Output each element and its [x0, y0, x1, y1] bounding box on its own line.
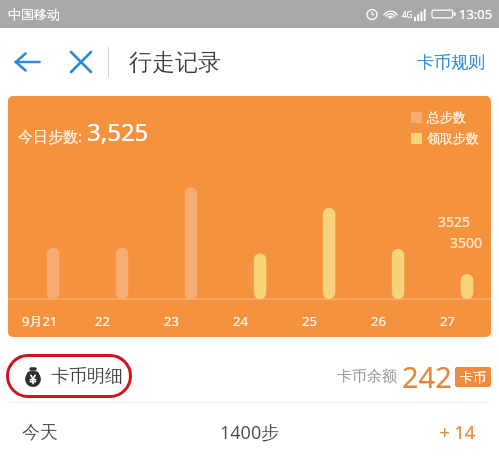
staticText: 26: [371, 312, 386, 330]
staticText: 27: [440, 312, 455, 330]
staticText: 总步数: [427, 109, 466, 125]
staticText: 今天: [22, 421, 58, 444]
staticText: 3,525: [87, 115, 149, 148]
button[interactable]: 卡币余额: [337, 357, 491, 396]
staticText: 22: [95, 312, 110, 330]
button[interactable]: 今天: [0, 403, 499, 461]
staticText: 1400步: [220, 420, 280, 445]
staticText: 23: [164, 312, 179, 330]
staticText: 中国移动: [8, 6, 60, 22]
staticText: 3525: [438, 212, 471, 231]
staticText: 24: [233, 312, 248, 330]
staticText: 242: [402, 357, 452, 396]
staticText: 卡币: [460, 369, 486, 385]
staticText: 卡币明细: [51, 365, 123, 388]
staticText: 25: [302, 312, 317, 330]
staticText: 今日步数:: [18, 126, 83, 146]
staticText: + 14: [439, 420, 475, 445]
staticText: 3500: [450, 233, 483, 252]
staticText: 卡币余额: [337, 367, 397, 386]
staticText: 4G: [402, 9, 413, 20]
staticText: 9月21: [22, 312, 58, 330]
staticText: 13:05: [459, 5, 493, 23]
button[interactable]: 卡币规则: [403, 40, 499, 85]
button[interactable]: 卡币明细: [6, 354, 132, 398]
staticText: 领取步数: [427, 130, 479, 146]
button[interactable]: Close: [54, 35, 108, 89]
staticText: 行走记录: [129, 48, 221, 77]
staticText: 卡币规则: [417, 52, 485, 73]
button[interactable]: Back: [0, 35, 54, 89]
